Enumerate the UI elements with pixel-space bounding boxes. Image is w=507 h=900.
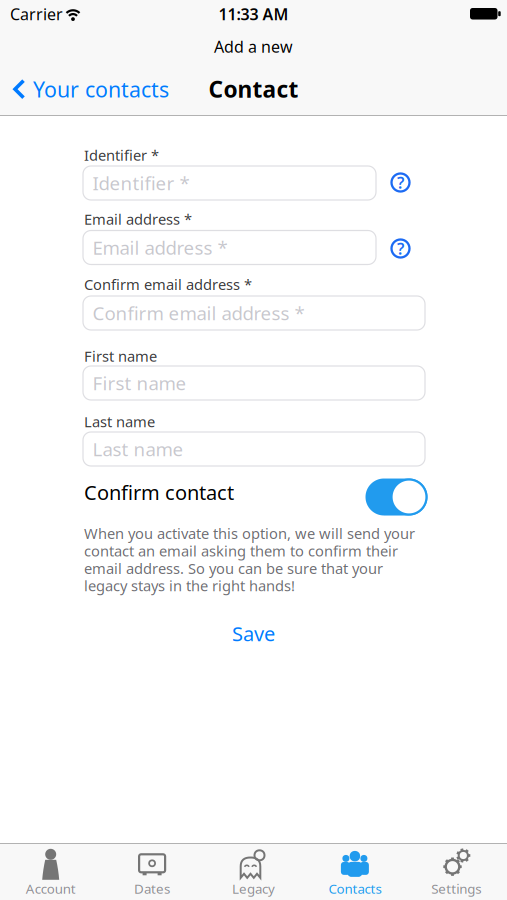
button[interactable]: Account — [0, 843, 101, 900]
staticText: Legacy — [232, 880, 275, 897]
button[interactable]: Settings — [406, 843, 507, 900]
staticText: Email address * — [84, 209, 192, 229]
button[interactable]: Legacy — [203, 843, 304, 900]
staticText: Confirm email address * — [92, 301, 304, 325]
button[interactable]: Confirm contact — [365, 478, 427, 515]
staticText: Add a new — [214, 36, 293, 57]
staticText: First name — [84, 346, 157, 366]
staticText: legacy stays in the right hands! — [84, 576, 295, 595]
staticText: Your contacts — [33, 75, 169, 103]
staticText: Identifier * — [92, 171, 189, 195]
button[interactable]: Your contacts — [13, 75, 169, 103]
staticText: Account — [26, 880, 76, 897]
staticText: First name — [92, 371, 186, 395]
button[interactable]: Dates — [101, 843, 203, 900]
staticText: Email address * — [92, 235, 227, 260]
staticText: Contacts — [328, 880, 381, 897]
staticText: Contact — [208, 74, 298, 104]
button[interactable]: Help — [390, 172, 411, 193]
staticText: ? — [397, 238, 404, 259]
staticText: Last name — [84, 412, 155, 431]
staticText: Settings — [431, 880, 481, 897]
staticText: Identifier * — [84, 145, 159, 165]
button[interactable]: Contacts — [304, 843, 406, 900]
staticText: ? — [397, 172, 404, 193]
staticText: Carrier — [10, 3, 63, 25]
staticText: contact an email asking them to confirm … — [84, 541, 398, 560]
staticText: Last name — [92, 437, 183, 461]
staticText: Confirm contact — [84, 479, 234, 505]
staticText: email address. So you can be sure that y… — [84, 558, 383, 578]
staticText: 11:33 AM — [218, 3, 288, 25]
staticText: Save — [232, 620, 275, 647]
button[interactable]: Save — [232, 620, 275, 647]
button[interactable]: Help — [390, 238, 411, 259]
staticText: Dates — [134, 880, 170, 897]
staticText: When you activate this option, we will s… — [84, 523, 415, 543]
staticText: Confirm email address * — [84, 275, 252, 294]
